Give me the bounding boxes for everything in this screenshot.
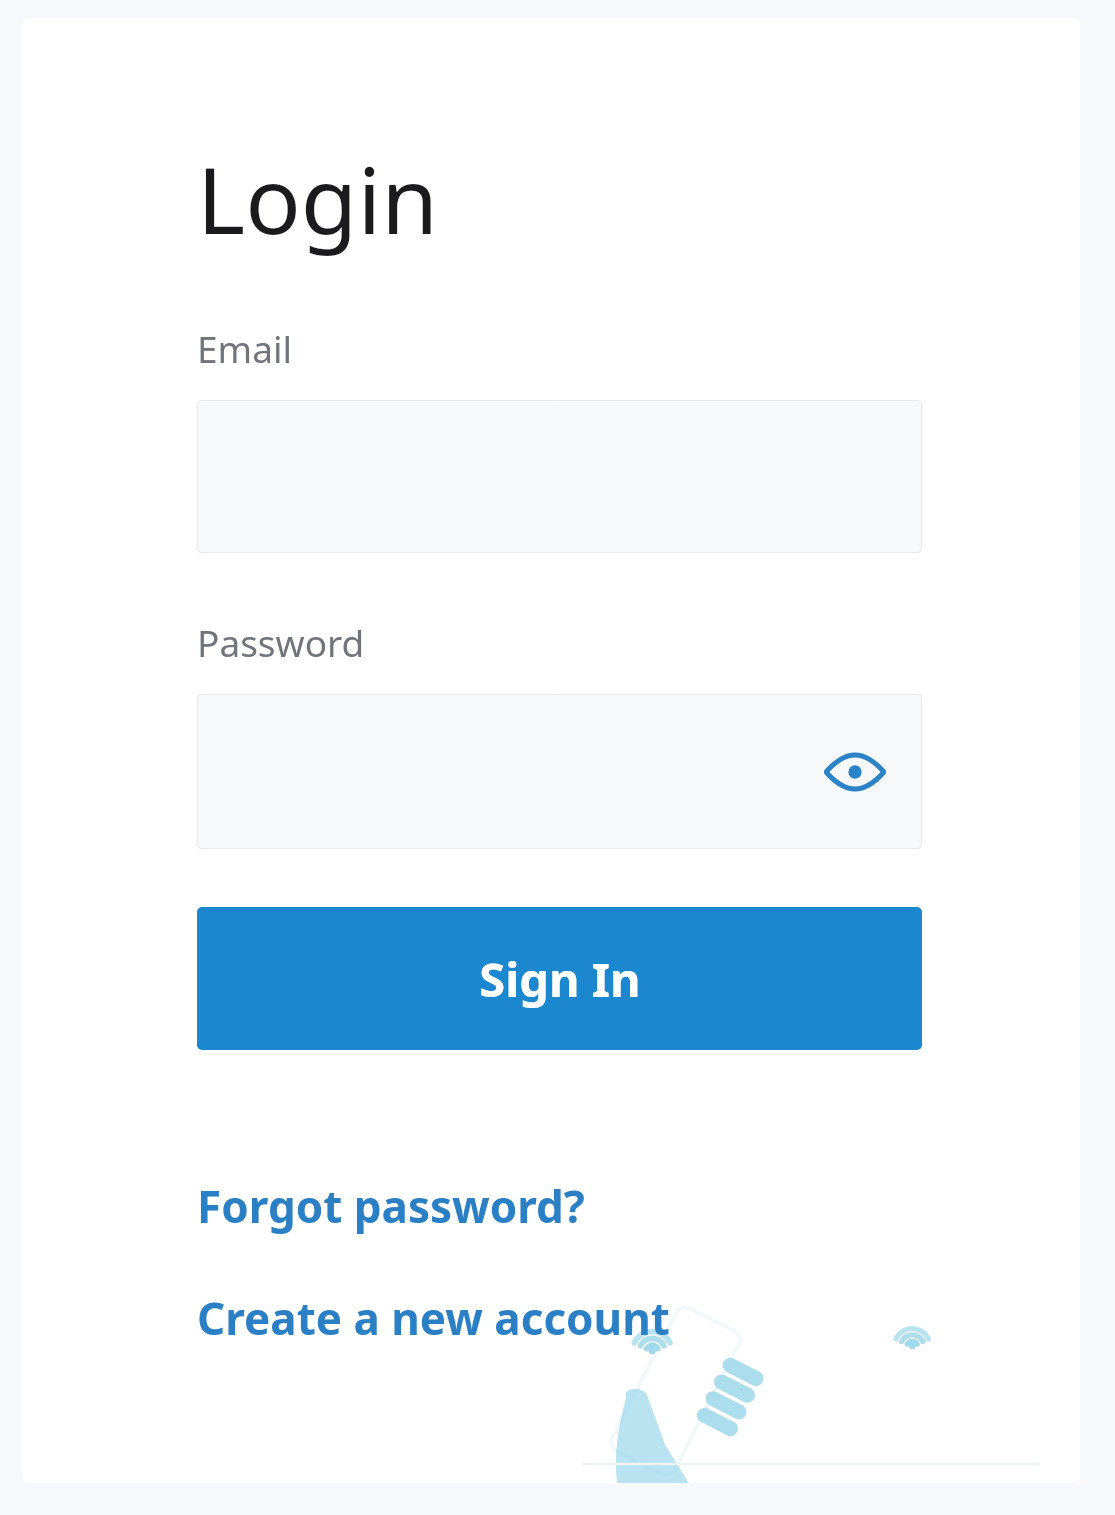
staticText: Forgot password? bbox=[197, 1176, 585, 1236]
button[interactable]: Show password bbox=[197, 694, 922, 849]
staticText: Sign In bbox=[479, 947, 641, 1011]
button[interactable]: Create a new account bbox=[197, 1284, 670, 1352]
staticText: Email bbox=[197, 323, 293, 373]
button[interactable]: Show password bbox=[824, 741, 886, 803]
staticText: Create a new account bbox=[197, 1288, 670, 1348]
staticText: Login bbox=[197, 136, 439, 261]
button[interactable]: Sign In bbox=[197, 907, 922, 1050]
staticText: Password bbox=[197, 617, 365, 667]
button[interactable]: Forgot password? bbox=[197, 1172, 585, 1240]
